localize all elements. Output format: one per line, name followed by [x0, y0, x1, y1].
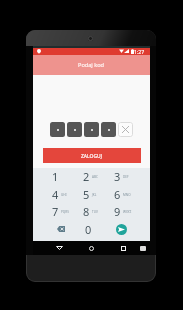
button[interactable]: ZALOGUJ: [43, 148, 141, 163]
button[interactable]: 9: [102, 202, 133, 220]
staticText: ZALOGUJ: [81, 153, 103, 160]
staticText: PQRS: [61, 210, 69, 214]
staticText: 7: [52, 204, 59, 219]
button[interactable]: Digit 2: [67, 122, 82, 137]
staticText: 9: [114, 204, 121, 219]
button[interactable]: 8: [71, 202, 102, 220]
button[interactable]: 6: [102, 185, 133, 203]
button[interactable]: Digit 3: [84, 122, 99, 137]
button[interactable]: Recents: [117, 242, 129, 254]
staticText: 3: [114, 169, 121, 184]
button[interactable]: 1: [40, 167, 71, 185]
staticText: WXYZ: [123, 210, 132, 214]
button[interactable]: Back: [53, 242, 65, 254]
staticText: 1: [52, 169, 59, 184]
button[interactable]: Clear: [118, 122, 133, 137]
staticText: 4: [52, 187, 59, 202]
button[interactable]: 5: [71, 185, 102, 203]
button[interactable]: Send: [106, 220, 137, 238]
button[interactable]: 3: [102, 167, 133, 185]
staticText: 5: [83, 187, 90, 202]
button[interactable]: 0: [73, 220, 104, 238]
staticText: TUV: [92, 210, 98, 214]
button[interactable]: Digit 1: [50, 122, 65, 137]
staticText: MNO: [123, 193, 131, 197]
staticText: 6: [114, 187, 121, 202]
button[interactable]: 4: [40, 185, 71, 203]
button[interactable]: 2: [71, 167, 102, 185]
staticText: JKL: [92, 193, 97, 197]
staticText: 8: [83, 204, 90, 219]
button[interactable]: Home: [85, 242, 97, 254]
staticText: GHI: [61, 193, 67, 197]
button[interactable]: Digit 4: [101, 122, 116, 137]
button[interactable]: Keyboard: [137, 242, 149, 254]
staticText: DEF: [123, 175, 129, 179]
staticText: ABC: [92, 175, 98, 179]
button[interactable]: 7: [40, 202, 71, 220]
staticText: 1:27: [134, 48, 145, 55]
staticText: 2: [83, 169, 90, 184]
staticText: 0: [85, 222, 92, 237]
staticText: Podaj kod: [78, 61, 105, 69]
button[interactable]: Backspace: [45, 220, 76, 238]
